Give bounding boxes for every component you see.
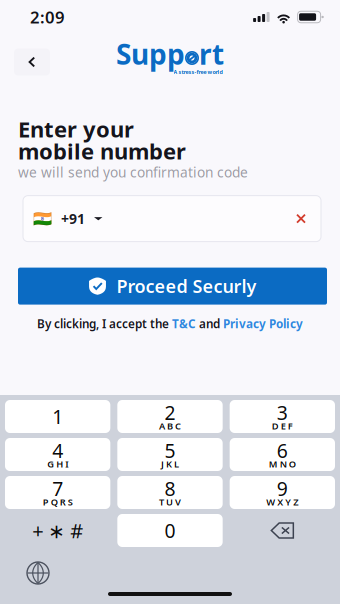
staticText: 6 [277,437,288,464]
staticText: Enter your [18,114,134,144]
staticText: +91 [61,209,85,228]
staticText: 5 [164,437,175,464]
staticText: W X Y Z [266,496,298,508]
staticText: M N O [269,458,296,470]
staticText: 2:09 [30,6,65,28]
staticText: and [196,316,223,332]
staticText: Privacy Policy [223,316,303,332]
staticText: 1 [52,403,63,430]
button[interactable]: 3 [230,400,335,433]
button[interactable]: + ∗ # [5,514,110,547]
button[interactable]: 7 [5,476,110,509]
staticText: P Q R S [43,496,73,508]
button[interactable]: 8 [117,476,223,509]
staticText: 0 [164,517,175,544]
staticText: T U V [159,496,181,508]
button[interactable]: 4 [5,438,110,471]
staticText: 7 [52,475,63,502]
staticText: D E F [272,420,293,432]
staticText: 2 [164,399,175,426]
button[interactable]: T&C [172,316,196,332]
staticText: A stress-free world [173,68,222,76]
button[interactable]: Proceed Securly [18,268,327,305]
button[interactable]: 1 [5,400,110,433]
staticText: we will send you confirmation code [18,163,248,182]
staticText: 8 [164,475,175,502]
button[interactable]: Privacy Policy [223,316,303,332]
staticText: T&C [172,316,196,332]
button[interactable]: 5 [117,438,223,471]
staticText: mobile number [18,136,186,166]
staticText: By clicking, I accept the [37,316,172,332]
staticText: J K L [161,458,179,470]
staticText: + ∗ # [32,517,83,544]
staticText: Supp [116,35,185,73]
staticText: 🇮🇳 [33,210,52,228]
button[interactable]: 2 [117,400,223,433]
staticText: 4 [52,437,63,464]
staticText: 3 [277,399,288,426]
staticText: A B C [159,420,181,432]
button[interactable]: Back [14,48,50,75]
button[interactable]: 9 [230,476,335,509]
staticText: G H I [47,458,68,470]
button[interactable]: Switch keyboard [21,556,55,590]
button[interactable]: 6 [230,438,335,471]
staticText: Proceed Securly [116,274,256,298]
staticText: rt [199,35,224,73]
button[interactable]: 0 [117,514,223,547]
staticText: 9 [277,475,288,502]
button[interactable]: Delete [230,514,335,547]
